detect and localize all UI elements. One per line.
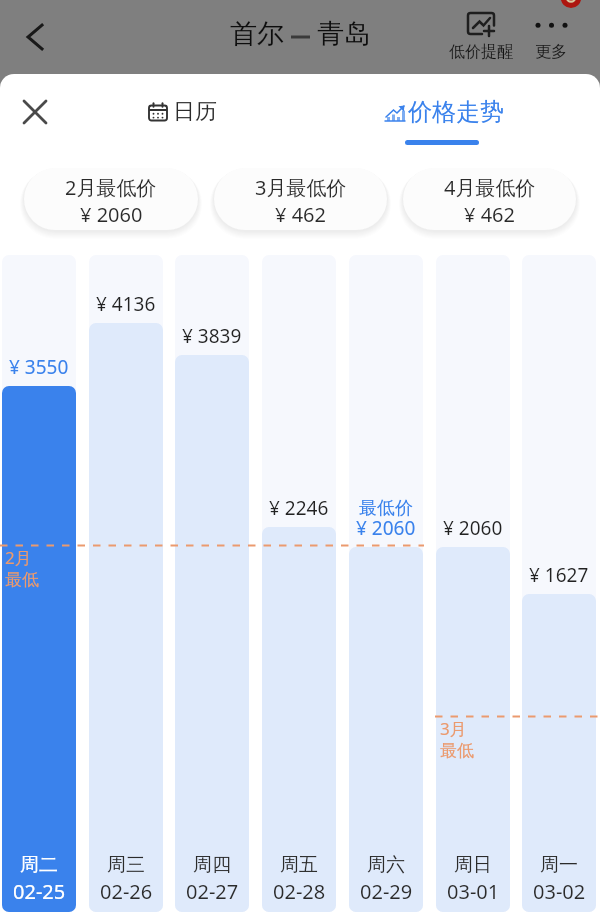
staticText: 3月 <box>440 717 467 740</box>
staticText: 日历 <box>173 98 217 126</box>
button[interactable]: 2月最低价 <box>24 168 198 230</box>
staticText: 周五 <box>280 853 318 877</box>
staticText: 02-27 <box>186 878 239 905</box>
staticText: 02-28 <box>273 878 326 905</box>
staticText: 价格走势 <box>408 97 504 127</box>
staticText: 最低 <box>5 569 39 590</box>
staticText: ¥ 4136 <box>96 291 156 317</box>
staticText: 最低价 <box>359 497 413 520</box>
button[interactable]: 日历 <box>148 98 217 126</box>
staticText: 周三 <box>107 853 145 877</box>
staticText: 低价提醒 <box>449 42 513 62</box>
staticText: 周一 <box>540 853 578 877</box>
staticText: 03-01 <box>447 878 500 905</box>
staticText: 3月最低价 <box>255 174 347 201</box>
staticText: ¥ 462 <box>464 201 515 228</box>
button[interactable] <box>89 255 163 912</box>
staticText: ¥ 1627 <box>529 562 589 588</box>
button[interactable]: Back <box>13 15 57 59</box>
staticText: 02-29 <box>360 878 413 905</box>
staticText: ¥ 2246 <box>269 495 329 521</box>
staticText: ¥ 462 <box>275 201 326 228</box>
staticText: 周日 <box>454 853 492 877</box>
staticText: 02-25 <box>13 878 66 905</box>
button[interactable] <box>436 255 510 912</box>
button[interactable]: 3月最低价 <box>214 168 387 230</box>
staticText: ¥ 2060 <box>443 515 503 541</box>
button[interactable] <box>175 255 249 912</box>
staticText: 2月 <box>5 546 32 569</box>
staticText: 03-02 <box>533 878 586 905</box>
staticText: 周六 <box>367 853 405 877</box>
staticText: 02-26 <box>100 878 153 905</box>
staticText: 2月最低价 <box>65 174 157 201</box>
staticText: 周二 <box>20 853 58 877</box>
button[interactable] <box>2 255 76 912</box>
staticText: ¥ 3839 <box>182 323 242 349</box>
staticText: ¥ 3550 <box>9 354 69 380</box>
staticText: 周四 <box>193 853 231 877</box>
button[interactable] <box>349 255 423 912</box>
button[interactable]: More <box>520 6 582 64</box>
button[interactable]: Close <box>13 90 57 134</box>
staticText: ¥ 2060 <box>356 515 416 541</box>
staticText: 4月最低价 <box>444 174 536 201</box>
button[interactable]: 低价提醒 <box>444 6 518 64</box>
button[interactable] <box>262 255 336 912</box>
button[interactable]: 4月最低价 <box>403 168 576 230</box>
staticText: 最低 <box>440 740 474 761</box>
button[interactable] <box>522 255 596 912</box>
staticText: 青岛 <box>317 17 371 51</box>
staticText: 更多 <box>535 42 567 62</box>
staticText: 首尔 <box>230 17 284 51</box>
staticText: ¥ 2060 <box>80 201 143 228</box>
button[interactable]: 价格走势 <box>383 97 504 127</box>
